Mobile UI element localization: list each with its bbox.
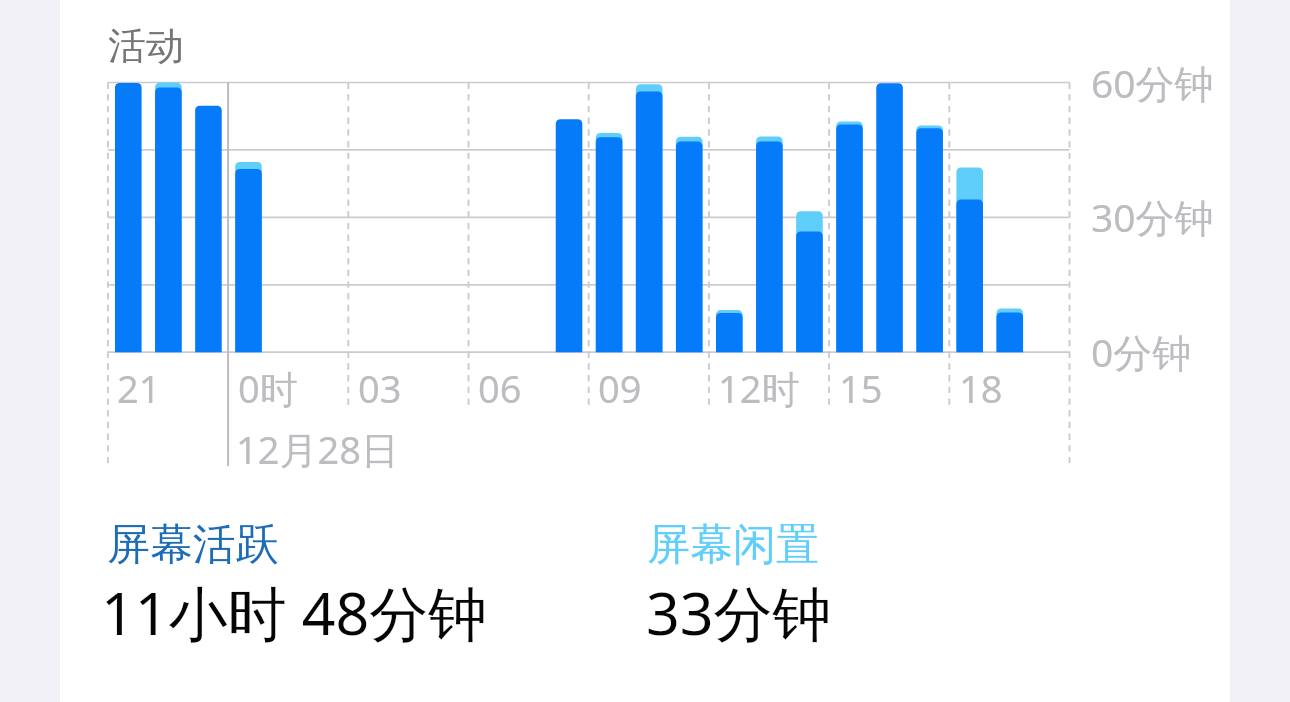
staticText: 09 [598,362,642,414]
staticText: 0时 [238,362,298,414]
staticText: 18 [959,362,1003,414]
staticText: 30分钟 [1091,190,1214,243]
button[interactable]: 屏幕活跃 [107,512,627,652]
staticText: 15 [839,362,883,414]
staticText: 03 [358,362,402,414]
staticText: 06 [478,362,522,414]
staticText: 活动 [108,22,184,70]
staticText: 11小时 48分钟 [101,572,488,653]
staticText: 12月28日 [236,423,399,475]
button[interactable]: 活动图表 [100,70,1080,470]
staticText: 60分钟 [1091,56,1214,109]
staticText: 0分钟 [1091,325,1192,378]
staticText: 33分钟 [646,572,832,653]
staticText: 21 [117,362,161,414]
staticText: 屏幕活跃 [107,518,279,572]
button[interactable]: 屏幕闲置 [647,512,1167,652]
staticText: 屏幕闲置 [647,518,819,572]
staticText: 12时 [718,362,800,414]
